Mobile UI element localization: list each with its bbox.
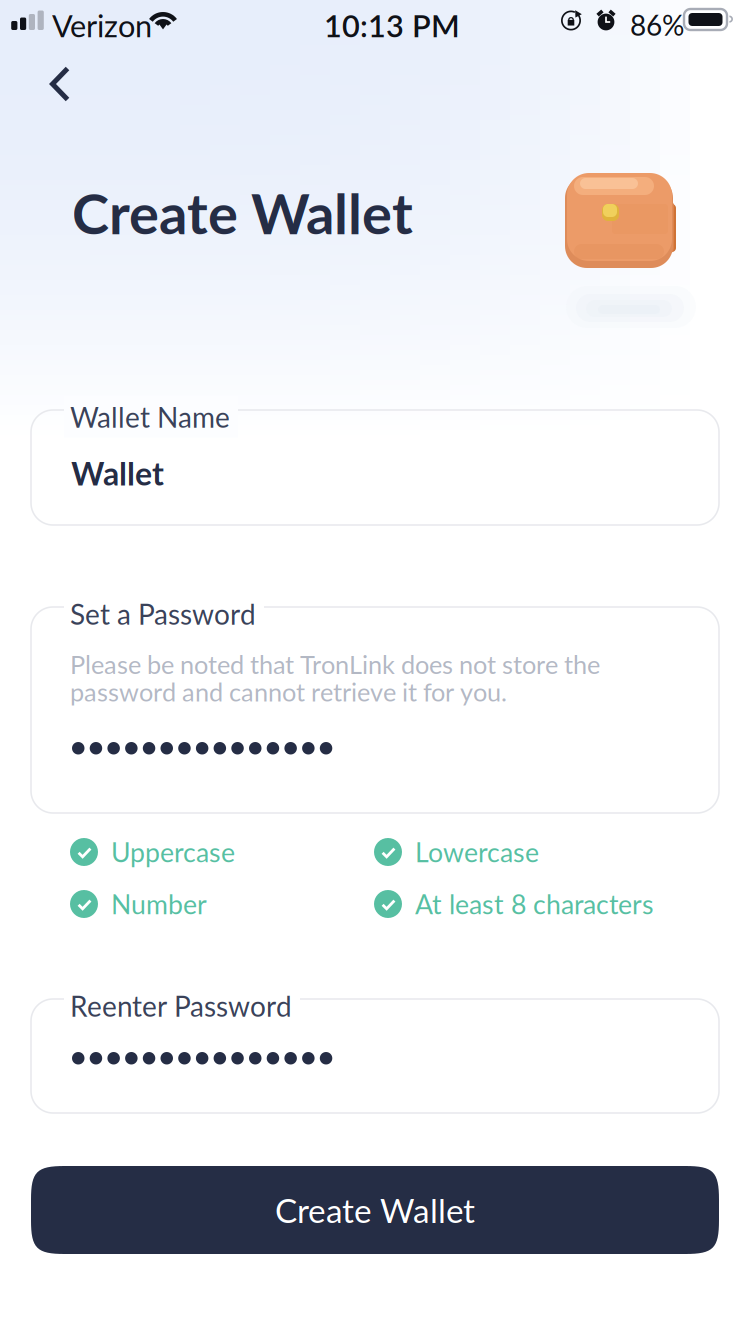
staticText: Create Wallet	[275, 1190, 475, 1230]
staticText: At least 8 characters	[415, 888, 654, 920]
staticText: 86%	[630, 8, 684, 42]
staticText: Lowercase	[415, 836, 539, 868]
staticText: 10:13 PM	[324, 7, 460, 44]
staticText: Set a Password	[70, 597, 256, 631]
staticText: Reenter Password	[70, 989, 292, 1023]
staticText: Verizon	[52, 7, 152, 44]
staticText: Number	[111, 888, 207, 920]
staticText: Wallet	[71, 454, 164, 492]
staticText: Please be noted that TronLink does not s…	[70, 649, 600, 679]
staticText: password and cannot retrieve it for you.	[70, 676, 507, 707]
staticText: Wallet Name	[70, 400, 230, 434]
button[interactable]: Create Wallet	[31, 1166, 719, 1254]
staticText: Create Wallet	[72, 179, 413, 246]
staticText: Uppercase	[111, 836, 235, 868]
button[interactable]: Back	[35, 55, 93, 115]
